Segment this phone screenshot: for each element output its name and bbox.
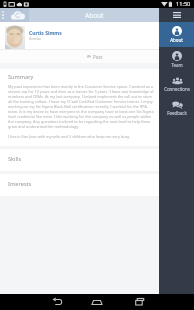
staticText: Director [29, 37, 42, 41]
staticText: Interests [8, 180, 32, 188]
button[interactable]: Summary [0, 69, 159, 146]
staticText: Feedback [167, 110, 187, 116]
staticText: About [85, 11, 104, 20]
button[interactable]: Menu [159, 8, 194, 22]
staticText: About [170, 37, 183, 43]
staticText: My past experience has been mainly in th… [8, 84, 154, 129]
staticText: Skills [8, 155, 22, 163]
staticText: Post [93, 54, 103, 60]
button[interactable]: Team [159, 47, 194, 72]
button[interactable]: Connections [159, 72, 194, 96]
staticText: Curtis Simms [29, 30, 62, 37]
button[interactable]: Home [6, 8, 29, 22]
staticText: 11:50 [176, 0, 191, 8]
button[interactable]: Post [30, 50, 159, 63]
staticText: Summary [8, 73, 34, 81]
button[interactable]: Skills [0, 149, 159, 171]
staticText: I live in San Jose with my wife and 3 ch… [8, 134, 131, 139]
button[interactable]: Interests [0, 174, 159, 196]
staticText: Connections [164, 86, 190, 92]
staticText: Team [171, 62, 183, 68]
button[interactable]: About [159, 22, 194, 47]
button[interactable]: Feedback [159, 96, 194, 121]
